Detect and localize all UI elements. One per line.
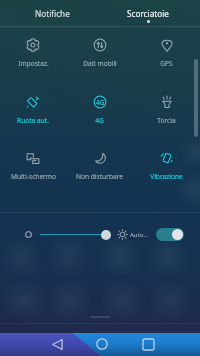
button[interactable]: Luminosita automatica [156,228,184,241]
button[interactable]: Notifiche [4,0,100,26]
staticText: Non disturbare [76,172,123,181]
staticText: Impostaz. [18,59,49,68]
staticText: GPS [160,59,173,68]
staticText: Vibrazione [150,172,183,181]
staticText: Notifiche [35,8,70,19]
button[interactable]: Dati mobili [66,27,133,83]
staticText: Dati mobili [83,59,117,68]
staticText: Auto... [130,231,149,239]
button[interactable]: Non disturbare [66,140,133,196]
button[interactable]: Scorciatoie [100,0,196,26]
staticText: 4G [96,98,105,107]
button[interactable]: Home [91,333,113,355]
button[interactable]: 4G [66,84,133,140]
button[interactable]: Torcia [133,84,200,140]
staticText: Ruota aut. [17,116,49,125]
button[interactable]: Impostaz. [0,27,66,83]
button[interactable]: Recents [137,333,159,355]
staticText: Multi-schermo [11,172,56,181]
staticText: Torcia [157,116,176,125]
button[interactable]: Vibrazione [133,140,200,196]
button[interactable]: Multi-schermo [0,140,66,196]
staticText: 4G [95,116,104,125]
button[interactable]: GPS [133,27,200,83]
button[interactable]: Back [46,333,68,355]
button[interactable]: Ruota aut. [0,84,66,140]
staticText: Scorciatoie [127,8,169,19]
